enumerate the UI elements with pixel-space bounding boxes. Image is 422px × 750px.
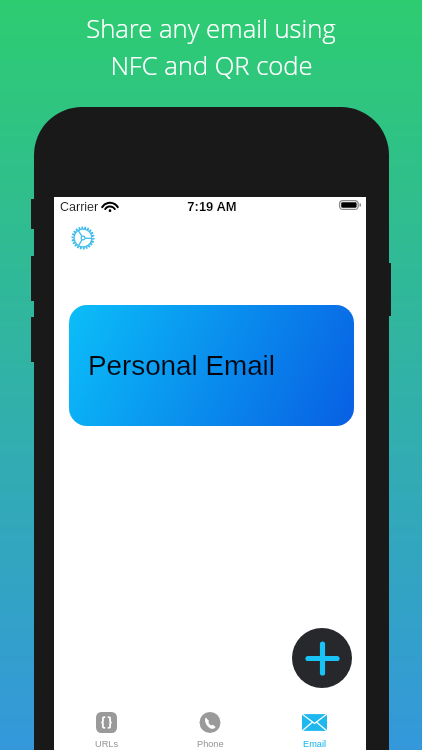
button[interactable]: Phone [158,697,262,749]
button[interactable]: Email [262,697,366,749]
staticText: Personal Email [88,350,275,381]
staticText: NFC and QR code [110,48,313,83]
staticText: URLs [95,739,118,749]
staticText: 7:19 AM [56,199,368,214]
staticText: Phone [197,739,224,749]
staticText: Carrier [60,200,99,214]
button[interactable]: Settings [72,227,94,249]
button[interactable]: Personal Email [69,305,354,426]
staticText: Share any email using [86,11,336,46]
button[interactable]: URLs [54,697,158,749]
button[interactable]: Add [292,628,352,688]
staticText: Email [303,739,326,749]
